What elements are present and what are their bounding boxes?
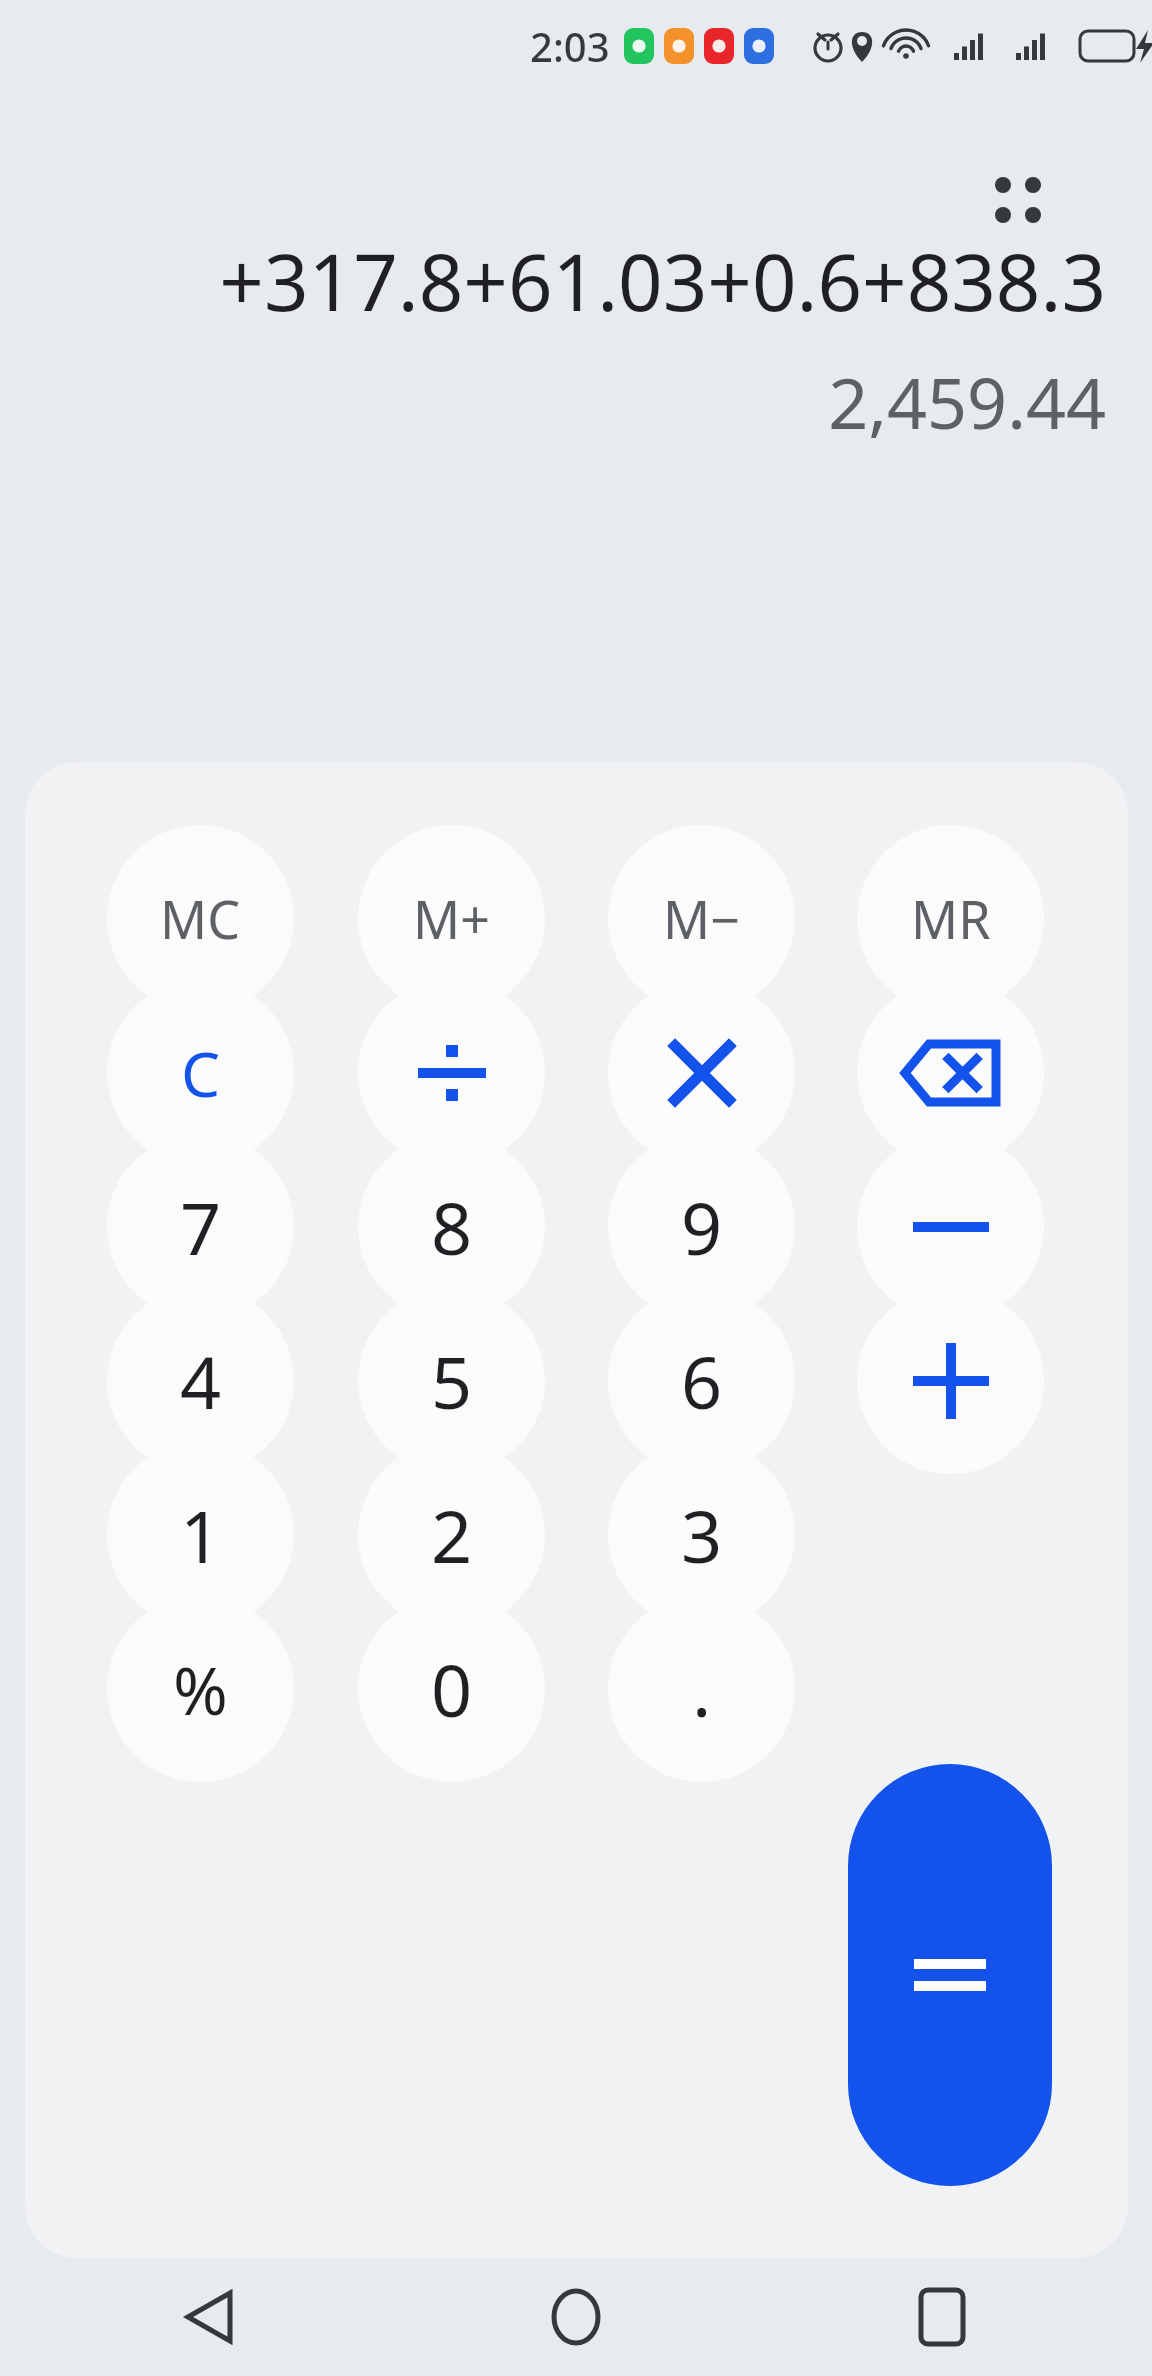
button[interactable]: 6 <box>608 1287 795 1474</box>
button[interactable]: % <box>107 1595 294 1782</box>
staticText: 0 <box>431 1640 473 1738</box>
button[interactable]: Back <box>150 2258 270 2376</box>
button[interactable]: 7 <box>107 1133 294 1320</box>
button[interactable]: 3 <box>608 1441 795 1628</box>
button[interactable]: 8 <box>358 1133 545 1320</box>
button[interactable]: Divide <box>358 979 545 1166</box>
button[interactable]: Calculation history <box>970 152 1066 248</box>
staticText: 1 <box>180 1486 222 1584</box>
button[interactable]: Backspace <box>857 979 1044 1166</box>
staticText: 6 <box>681 1332 723 1430</box>
button[interactable]: Equals <box>848 1764 1052 2186</box>
staticText: +317.8+61.03+0.6+838.3 <box>219 228 1106 334</box>
button[interactable]: MC <box>107 825 294 1012</box>
button[interactable]: Minus <box>857 1133 1044 1320</box>
staticText: 2:03 <box>530 19 610 73</box>
button[interactable]: . <box>608 1595 795 1782</box>
staticText: 2,459.44 <box>828 354 1106 449</box>
button[interactable]: 1 <box>107 1441 294 1628</box>
button[interactable]: M+ <box>358 825 545 1012</box>
staticText: 4 <box>180 1332 222 1430</box>
button[interactable]: Plus <box>857 1287 1044 1474</box>
button[interactable]: Recents <box>882 2258 1002 2376</box>
staticText: % <box>173 1644 228 1734</box>
staticText: 2 <box>431 1486 473 1584</box>
staticText: MC <box>160 883 241 954</box>
staticText: M− <box>663 883 740 954</box>
staticText: 7 <box>180 1178 222 1276</box>
staticText: 3 <box>681 1486 723 1584</box>
staticText: 8 <box>431 1178 473 1276</box>
button[interactable]: M− <box>608 825 795 1012</box>
staticText: M+ <box>413 883 490 954</box>
staticText: 5 <box>431 1332 473 1430</box>
staticText: C <box>181 1031 221 1115</box>
button[interactable]: 2 <box>358 1441 545 1628</box>
staticText: MR <box>911 883 991 954</box>
staticText: . <box>692 1640 712 1738</box>
staticText: 9 <box>681 1178 723 1276</box>
button[interactable]: 5 <box>358 1287 545 1474</box>
button[interactable]: 4 <box>107 1287 294 1474</box>
button[interactable]: 9 <box>608 1133 795 1320</box>
button[interactable]: Home <box>516 2258 636 2376</box>
button[interactable]: MR <box>857 825 1044 1012</box>
button[interactable]: Multiply <box>608 979 795 1166</box>
button[interactable]: C <box>107 979 294 1166</box>
button[interactable]: 0 <box>358 1595 545 1782</box>
